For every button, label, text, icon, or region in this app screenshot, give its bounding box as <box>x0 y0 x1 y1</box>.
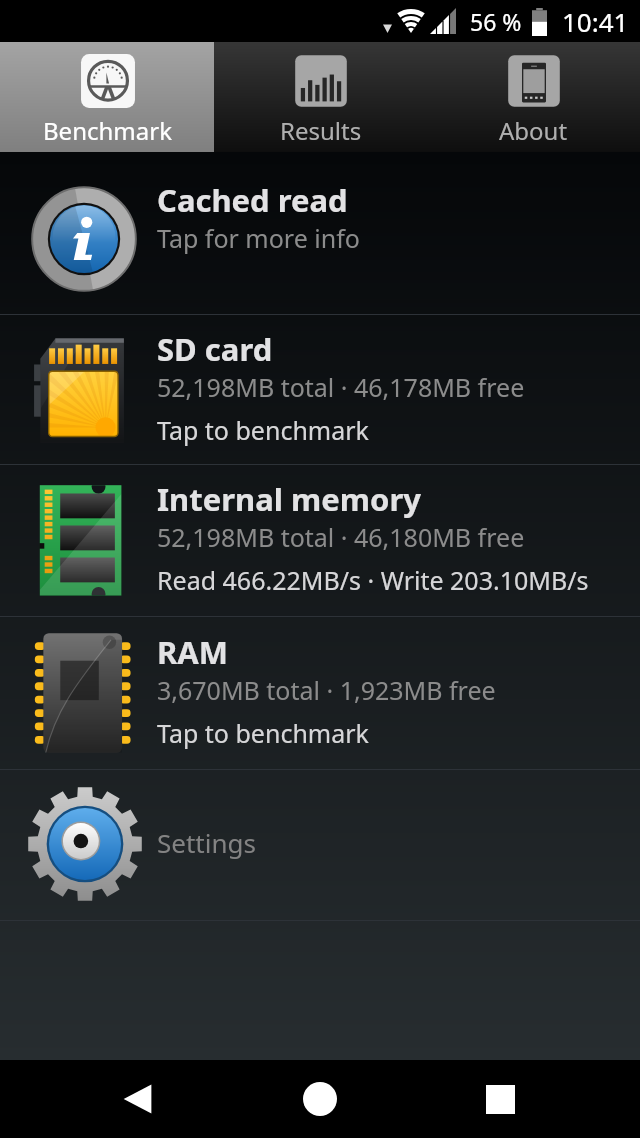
staticText: 56 % <box>470 6 522 37</box>
staticText: Settings <box>157 825 256 860</box>
button[interactable]: Benchmark <box>0 42 214 152</box>
staticText: Tap to benchmark <box>157 413 369 447</box>
staticText: Read 466.22MB/s · Write 203.10MB/s <box>157 563 589 597</box>
staticText: RAM <box>157 631 229 673</box>
button[interactable]: Recent apps <box>460 1060 540 1138</box>
button[interactable]: Home <box>280 1060 360 1138</box>
staticText: Cached read <box>157 179 348 221</box>
button[interactable]: SD card <box>0 315 640 464</box>
staticText: 3,670MB total · 1,923MB free <box>157 673 496 707</box>
button[interactable]: Internal memory <box>0 465 640 616</box>
staticText: SD card <box>157 328 273 370</box>
staticText: 52,198MB total · 46,180MB free <box>157 520 525 554</box>
staticText: 10:41 <box>562 4 629 39</box>
staticText: Results <box>280 114 362 147</box>
staticText: Internal memory <box>157 478 421 520</box>
button[interactable]: Cached read <box>0 152 640 314</box>
staticText: 52,198MB total · 46,178MB free <box>157 370 525 404</box>
button[interactable]: Back <box>100 1060 180 1138</box>
button[interactable]: Settings <box>0 770 640 920</box>
staticText: Benchmark <box>43 114 172 147</box>
staticText: Tap for more info <box>157 221 360 255</box>
staticText: Tap to benchmark <box>157 716 369 750</box>
button[interactable]: Results <box>214 42 427 152</box>
button[interactable]: About <box>427 42 640 152</box>
button[interactable]: RAM <box>0 617 640 769</box>
staticText: About <box>499 114 568 147</box>
